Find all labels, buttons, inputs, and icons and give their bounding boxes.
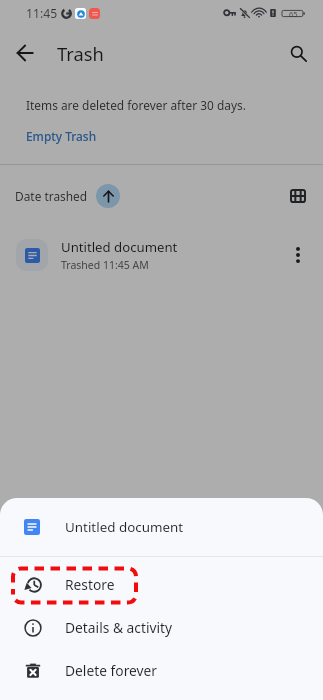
button[interactable]: More options xyxy=(283,240,313,270)
button[interactable]: Empty Trash xyxy=(20,126,103,146)
button[interactable]: Grid view xyxy=(282,180,314,212)
button[interactable]: Delete forever xyxy=(0,649,323,692)
button[interactable]: Details & activity xyxy=(0,606,323,649)
staticText: Items are deleted forever after 30 days. xyxy=(26,97,246,113)
staticText: Details & activity xyxy=(65,618,173,637)
staticText: 65 xyxy=(289,9,298,19)
button[interactable]: Restore xyxy=(0,563,323,606)
staticText: Untitled document xyxy=(61,238,178,256)
staticText: Restore xyxy=(65,575,115,594)
button[interactable]: Date trashed xyxy=(12,182,123,210)
button[interactable]: Untitled document xyxy=(0,230,323,280)
staticText: Trashed 11:45 AM xyxy=(61,258,149,272)
staticText: Date trashed xyxy=(15,188,88,204)
staticText: Empty Trash xyxy=(26,128,97,144)
button[interactable]: Back xyxy=(9,37,41,69)
staticText: 11:45 xyxy=(26,5,58,22)
staticText: Delete forever xyxy=(65,661,158,680)
staticText: Trash xyxy=(57,41,104,66)
button[interactable]: Search xyxy=(282,37,315,70)
staticText: Untitled document xyxy=(65,518,184,536)
